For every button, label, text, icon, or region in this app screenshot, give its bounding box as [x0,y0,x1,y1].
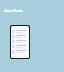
button[interactable] [12,34,28,39]
button[interactable] [12,39,28,44]
button[interactable] [12,29,28,34]
button[interactable] [12,49,28,54]
button[interactable] [12,44,28,49]
staticText: Some Words [4,9,23,13]
